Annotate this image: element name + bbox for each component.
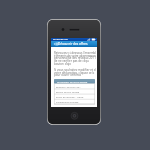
staticText: de ne verifier pas de cliqu (54, 59, 89, 63)
staticText: Retrouvez ci-dessous l'ensembl (54, 51, 97, 55)
staticText: Bonus OPTIO illimite (56, 90, 80, 93)
button[interactable]: Parametres d'usage (54, 99, 95, 104)
button[interactable]: Envoi de donnee - Alerte (54, 94, 95, 99)
staticText: Découvrir des offres (58, 42, 88, 46)
staticText: Bloquer l'OPTION 001 (56, 85, 81, 88)
staticText: éléments de votre abonnemen (54, 54, 96, 58)
staticText: personnalisé des reseaux 2011 (54, 56, 96, 60)
button[interactable]: Bonus OPTIO illimite (54, 89, 95, 94)
staticText: Si vous souhaitez modifier et d (54, 68, 96, 72)
staticText: pour ouvrir certifica (54, 73, 81, 77)
staticText: Envoi de donnee - Alerte (56, 95, 84, 98)
button[interactable]: Retour (51, 41, 58, 47)
staticText: bouton d'ajo (54, 62, 72, 66)
staticText: Sommaire de votre forfait (57, 80, 88, 83)
button[interactable]: Bloquer l'OPTION 001 (54, 84, 95, 89)
staticText: Bouygues Tel. (53, 38, 68, 41)
staticText: votre déclaration, cliquez ce b (54, 71, 95, 75)
staticText: Parametres d'usage (56, 100, 79, 103)
